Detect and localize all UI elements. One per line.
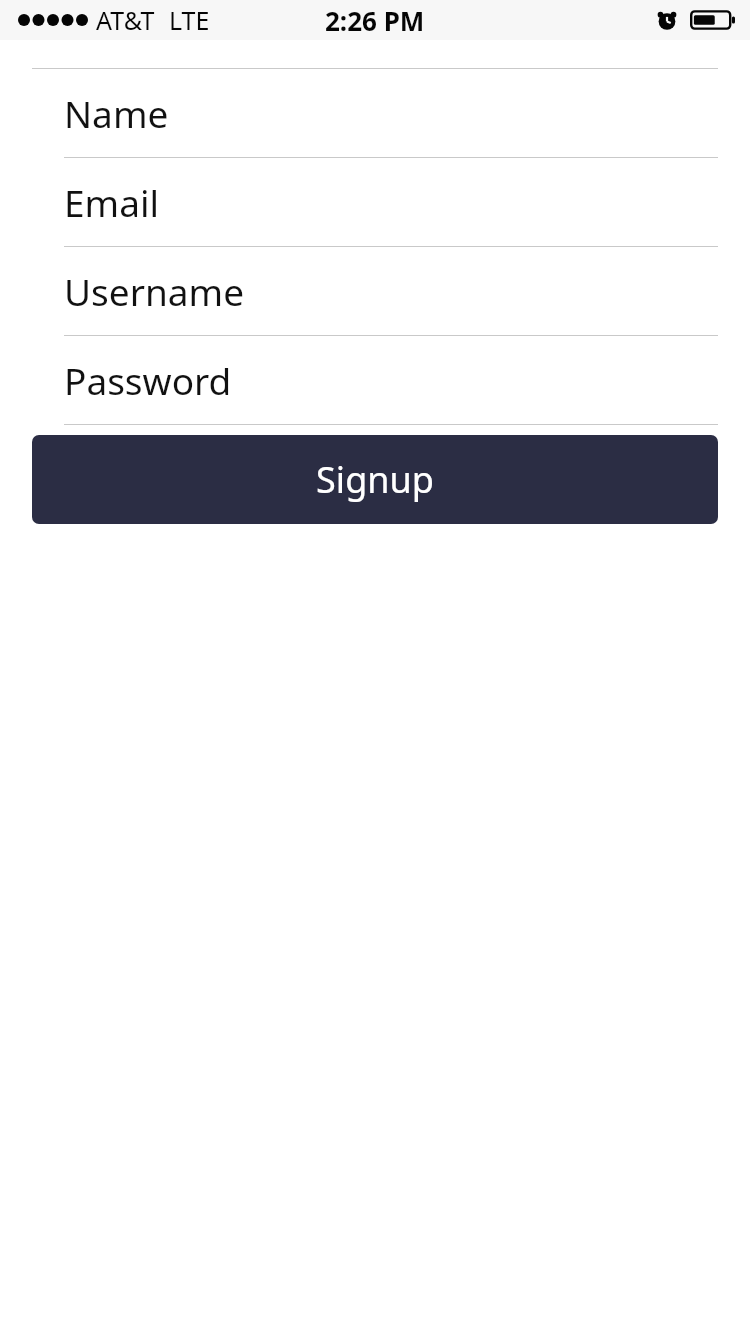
other: Alarm set [656,9,678,31]
staticText: Signup [316,455,434,504]
staticText: 2:26 PM [325,3,425,38]
button[interactable]: Signup [32,435,718,524]
button[interactable]: Email [0,158,750,247]
button[interactable]: Name [0,69,750,158]
staticText: LTE [169,3,210,37]
button[interactable]: Username [0,247,750,336]
staticText: AT&T [96,3,155,37]
staticText: Email [64,177,160,227]
staticText: Password [64,355,232,405]
staticText: Name [64,88,169,138]
staticText: Username [64,266,245,316]
button[interactable]: Password [0,336,750,425]
